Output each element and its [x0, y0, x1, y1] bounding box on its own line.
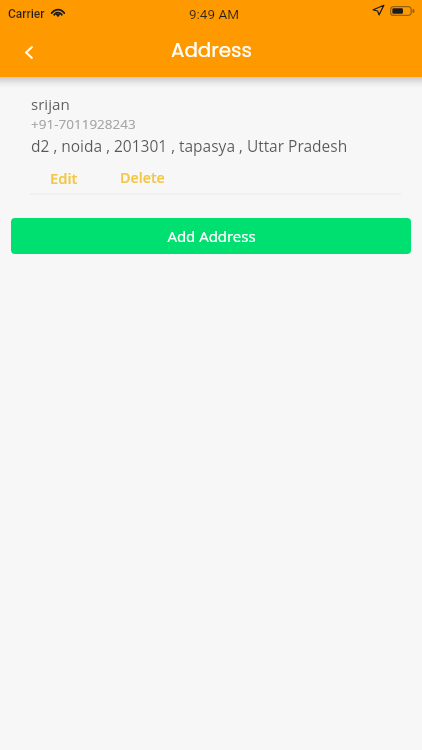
- staticText: Carrier: [8, 7, 45, 21]
- staticText: +91-7011928243: [31, 115, 136, 133]
- staticText: Add Address: [167, 226, 256, 246]
- staticText: Address: [171, 36, 252, 64]
- button[interactable]: Edit: [50, 168, 78, 188]
- staticText: 9:49 AM: [189, 6, 239, 22]
- staticText: Edit: [50, 168, 78, 188]
- staticText: Delete: [120, 168, 165, 187]
- button[interactable]: Back: [0, 28, 57, 77]
- staticText: srijan: [31, 94, 70, 115]
- staticText: d2 , noida , 201301 , tapasya , Uttar Pr…: [31, 135, 348, 156]
- button[interactable]: Add Address: [11, 218, 411, 254]
- button[interactable]: Delete: [120, 168, 165, 187]
